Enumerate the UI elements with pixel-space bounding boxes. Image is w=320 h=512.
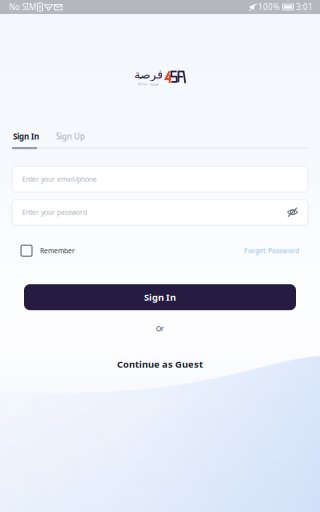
button[interactable]: Continue as Guest [117,358,203,370]
staticText: fursa ‧ فرصة [138,81,159,86]
staticText: 100% [258,2,280,12]
staticText: فرصة [134,67,163,81]
staticText: Enter your password [22,208,87,217]
button[interactable]: Sign In [24,284,296,310]
button[interactable]: Sign In [13,131,39,142]
staticText: Continue as Guest [117,358,203,370]
button[interactable]: Remember [21,245,75,256]
staticText: Sign In [13,131,39,142]
staticText: 3:01 [296,2,313,12]
staticText: Sign Up [56,131,85,142]
button[interactable]: Show password [287,207,298,218]
staticText: No SIM [9,2,36,12]
staticText: Enter your email/phone [22,175,97,184]
staticText: Or [156,324,164,333]
staticText: Forget Password [244,246,299,255]
button[interactable]: Forget Password [244,246,299,255]
staticText: Sign In [144,291,176,303]
button[interactable]: Sign Up [56,131,85,142]
staticText: Remember [40,246,75,255]
